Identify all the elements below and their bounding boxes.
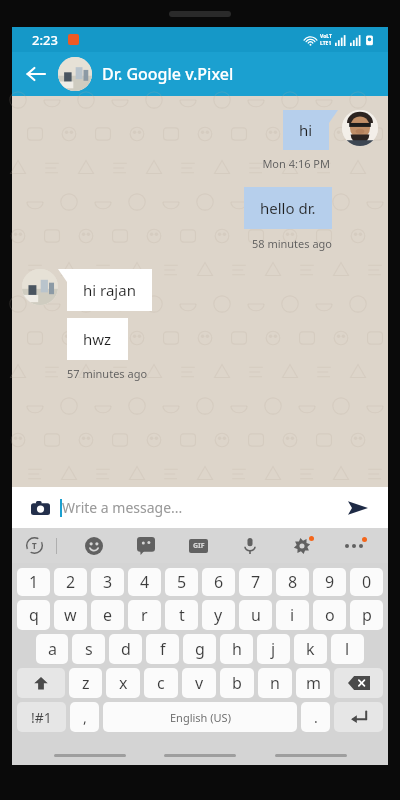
button[interactable]: m [296, 668, 330, 698]
staticText: 2:23 [32, 31, 58, 49]
button[interactable]: i [276, 600, 309, 630]
button[interactable]: Your photo [342, 110, 378, 146]
staticText: 7 [251, 571, 261, 593]
button[interactable]: b [220, 668, 254, 698]
button[interactable]: 4 [128, 568, 161, 596]
staticText: o [325, 604, 335, 626]
button[interactable]: s [72, 634, 105, 664]
button[interactable]: q [17, 600, 50, 630]
staticText: 9 [325, 571, 335, 593]
button[interactable]: p [350, 600, 383, 630]
button[interactable]: n [258, 668, 292, 698]
staticText: a [48, 638, 57, 660]
button[interactable]: z [69, 668, 102, 698]
button[interactable]: Settings [276, 528, 328, 563]
button[interactable]: c [144, 668, 178, 698]
button[interactable]: hi rajan [67, 269, 152, 311]
button[interactable]: 5 [165, 568, 198, 596]
staticText: , [83, 708, 87, 727]
button[interactable]: k [294, 634, 327, 664]
button[interactable]: Camera [24, 492, 56, 524]
button[interactable]: Backspace [334, 668, 383, 698]
button[interactable]: 7 [239, 568, 272, 596]
staticText: 57 minutes ago [67, 366, 148, 381]
button[interactable]: x [106, 668, 140, 698]
button[interactable]: l [331, 634, 364, 664]
staticText: 0 [362, 571, 372, 593]
button[interactable]: e [91, 600, 124, 630]
button[interactable]: 1 [17, 568, 50, 596]
staticText: v [195, 672, 204, 694]
staticText: c [157, 672, 165, 694]
staticText: x [119, 672, 128, 694]
button[interactable]: d [109, 634, 142, 664]
button[interactable]: w [54, 600, 87, 630]
staticText: GIF [193, 541, 205, 551]
staticText: p [362, 604, 372, 626]
staticText: Mon 4:16 PM [22, 156, 330, 171]
button[interactable]: 2 [54, 568, 87, 596]
staticText: !#1 [31, 708, 52, 727]
button[interactable]: r [128, 600, 161, 630]
staticText: s [85, 638, 93, 660]
staticText: 8 [288, 571, 298, 593]
staticText: hi [299, 120, 313, 140]
staticText: 5 [177, 571, 187, 593]
button[interactable]: v [182, 668, 216, 698]
staticText: h [232, 638, 242, 660]
staticText: English (US) [170, 710, 231, 725]
button[interactable]: h [220, 634, 253, 664]
button[interactable]: GIF [172, 528, 224, 563]
button[interactable]: o [313, 600, 346, 630]
button[interactable]: Back [18, 56, 54, 92]
staticText: e [103, 604, 113, 626]
button[interactable]: , [70, 702, 99, 732]
button[interactable]: t [165, 600, 198, 630]
button[interactable]: Shift [17, 668, 65, 698]
button[interactable]: Dr. Google v.Pixel [102, 63, 388, 85]
staticText: . [314, 708, 318, 727]
button[interactable]: 3 [91, 568, 124, 596]
staticText: y [214, 604, 223, 626]
button[interactable]: hi [283, 110, 338, 150]
button[interactable]: Write a message... [60, 487, 342, 528]
staticText: t [179, 604, 185, 626]
button[interactable]: hello dr. [244, 187, 332, 229]
button[interactable]: Enter [334, 702, 383, 732]
staticText: b [232, 672, 242, 694]
button[interactable]: Emoji [67, 528, 120, 563]
button[interactable]: j [257, 634, 290, 664]
button[interactable]: 6 [202, 568, 235, 596]
button[interactable]: Contact photo [58, 57, 92, 91]
button[interactable]: hwz [67, 318, 128, 360]
button[interactable]: Translate [12, 528, 56, 563]
staticText: 2 [66, 571, 76, 593]
staticText: j [271, 638, 276, 660]
button[interactable]: Space [103, 702, 297, 732]
button[interactable]: Stickers [120, 528, 172, 563]
button[interactable]: More options [328, 528, 380, 563]
staticText: 1 [29, 571, 39, 593]
button[interactable]: !#1 [17, 702, 66, 732]
button[interactable]: Voice input [224, 528, 276, 563]
button[interactable]: 8 [276, 568, 309, 596]
button[interactable]: f [146, 634, 179, 664]
button[interactable]: u [239, 600, 272, 630]
button[interactable]: y [202, 600, 235, 630]
staticText: f [160, 638, 166, 660]
staticText: n [270, 672, 280, 694]
staticText: l [345, 638, 350, 660]
button[interactable]: 9 [313, 568, 346, 596]
staticText: VoLT [320, 33, 332, 40]
button[interactable]: 0 [350, 568, 383, 596]
button[interactable]: a [36, 634, 68, 664]
staticText: w [64, 604, 77, 626]
button[interactable]: Send [342, 492, 374, 524]
staticText: 4 [140, 571, 150, 593]
staticText: g [195, 638, 205, 660]
button[interactable]: g [183, 634, 216, 664]
staticText: hwz [83, 329, 112, 349]
staticText: hello dr. [260, 198, 316, 218]
button[interactable]: . [301, 702, 330, 732]
button[interactable]: Contact photo [22, 269, 58, 305]
